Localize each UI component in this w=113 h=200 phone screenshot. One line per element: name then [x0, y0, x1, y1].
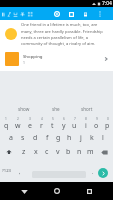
button[interactable]: show — [8, 102, 40, 115]
button[interactable]: 1 — [0, 117, 12, 131]
button[interactable]: x — [30, 145, 41, 159]
staticText: e — [28, 121, 32, 131]
button[interactable]: 5 — [47, 117, 58, 131]
staticText: h — [67, 133, 72, 143]
staticText: p — [105, 121, 110, 131]
staticText: v — [56, 147, 60, 157]
staticText: 6 — [63, 117, 65, 121]
staticText: w — [15, 121, 21, 131]
button[interactable]: Shopping — [0, 48, 113, 70]
button[interactable]: j — [75, 131, 86, 145]
button[interactable]: a — [5, 131, 17, 145]
staticText: f — [46, 133, 49, 143]
staticText: 1 — [5, 117, 7, 121]
button[interactable]: . — [87, 163, 98, 179]
staticText: 8 — [85, 117, 87, 121]
staticText: 7:04 — [102, 0, 112, 7]
button[interactable]: Underline — [10, 9, 20, 19]
staticText: 9 — [96, 117, 98, 121]
staticText: o — [94, 121, 99, 131]
button[interactable]: n — [74, 145, 85, 159]
button[interactable]: 8 — [80, 117, 91, 131]
button[interactable]: Back — [16, 183, 32, 199]
staticText: 5 — [52, 117, 54, 121]
button[interactable]: b — [63, 145, 74, 159]
button[interactable]: 0 — [102, 117, 113, 131]
staticText: m — [87, 147, 94, 157]
staticText: n — [77, 147, 82, 157]
button[interactable]: Home — [49, 183, 65, 199]
button[interactable]: 3 — [24, 117, 36, 131]
button[interactable]: 7 — [69, 117, 80, 131]
staticText: , — [19, 168, 21, 175]
button[interactable]: f — [41, 131, 53, 145]
staticText: show — [18, 106, 30, 112]
staticText: she — [52, 106, 60, 112]
button[interactable]: Shift — [0, 145, 18, 159]
button[interactable]: 6 — [58, 117, 69, 131]
button[interactable]: 9 — [91, 117, 102, 131]
button[interactable]: d — [29, 131, 41, 145]
staticText: y — [62, 121, 66, 131]
staticText: b — [66, 147, 71, 157]
button[interactable]: k — [86, 131, 97, 145]
staticText: 0 — [107, 117, 109, 121]
staticText: Shopping — [23, 53, 43, 59]
button[interactable]: , — [14, 163, 26, 179]
button[interactable]: z — [18, 145, 30, 159]
button[interactable]: h — [64, 131, 75, 145]
button[interactable]: Backspace — [96, 145, 113, 159]
staticText: i — [85, 121, 87, 131]
staticText: k — [90, 133, 94, 143]
staticText: ?123 — [2, 168, 12, 174]
button[interactable]: ?123 — [0, 163, 14, 179]
staticText: x — [34, 147, 38, 157]
button[interactable]: 4 — [36, 117, 47, 131]
staticText: One friend in a lifetime is much, too, a… — [21, 22, 107, 46]
staticText: 1 — [23, 60, 25, 65]
button[interactable]: c — [41, 145, 52, 159]
staticText: 4 — [41, 117, 43, 121]
staticText: . — [92, 168, 94, 175]
button[interactable]: Recent apps — [81, 183, 97, 199]
staticText: s — [21, 133, 25, 143]
staticText: z — [22, 147, 26, 157]
staticText: r — [40, 121, 43, 131]
staticText: 7 — [74, 117, 76, 121]
staticText: short — [81, 106, 93, 112]
button[interactable]: l — [97, 131, 108, 145]
staticText: j — [80, 133, 82, 143]
staticText: c — [45, 147, 49, 157]
staticText: q — [4, 121, 9, 131]
staticText: d — [33, 133, 38, 143]
button[interactable]: Italic — [4, 9, 14, 19]
button[interactable]: 2 — [12, 117, 24, 131]
staticText: 2 — [17, 117, 19, 121]
button[interactable]: Copy — [66, 9, 76, 19]
staticText: a — [9, 133, 13, 143]
button[interactable]: Select all — [52, 9, 62, 19]
staticText: g — [56, 133, 61, 143]
button[interactable]: Strikethrough — [17, 9, 27, 19]
staticText: t — [51, 121, 54, 131]
button[interactable]: Paste — [80, 9, 90, 19]
button[interactable]: More options — [95, 9, 105, 19]
button[interactable]: m — [85, 145, 96, 159]
button[interactable]: s — [17, 131, 29, 145]
button[interactable]: she — [40, 102, 71, 115]
button[interactable]: Enter — [98, 168, 108, 178]
button[interactable]: Bold — [0, 9, 8, 19]
staticText: 3 — [29, 117, 31, 121]
button[interactable]: g — [53, 131, 64, 145]
staticText: u — [72, 121, 77, 131]
button[interactable]: Text colour — [25, 9, 35, 19]
button[interactable]: short — [71, 102, 102, 115]
button[interactable]: v — [52, 145, 63, 159]
staticText: l — [102, 133, 104, 143]
